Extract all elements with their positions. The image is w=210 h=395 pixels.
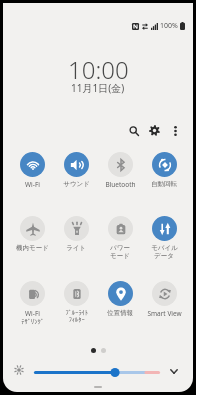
- staticText: パワー: [110, 244, 130, 252]
- staticText: ﾃｻﾞﾘﾝｸﾞ: [21, 318, 44, 325]
- button[interactable]: Wi-Fi: [11, 152, 53, 189]
- button[interactable]: Bluetooth: [99, 152, 141, 189]
- button[interactable]: More options: [168, 123, 183, 138]
- button[interactable]: Smart View: [143, 281, 185, 318]
- button[interactable]: モバイル: [143, 216, 185, 260]
- staticText: 11月1日(金): [71, 81, 125, 95]
- staticText: 自動回転: [151, 180, 177, 188]
- button[interactable]: 位置情報: [99, 281, 141, 317]
- button[interactable]: ライト: [55, 216, 97, 252]
- staticText: 10:00: [68, 53, 129, 86]
- button[interactable]: ﾌﾞﾙｰﾗｲﾄ: [55, 281, 97, 323]
- staticText: 位置情報: [107, 309, 133, 317]
- staticText: Wi-Fi: [25, 180, 40, 189]
- button[interactable]: Expand quick settings: [167, 365, 180, 378]
- staticText: Wi-Fi: [25, 309, 40, 318]
- button[interactable]: Wi-Fi: [11, 281, 53, 325]
- staticText: Smart View: [147, 309, 182, 318]
- staticText: Bluetooth: [105, 180, 136, 189]
- button[interactable]: パワー: [99, 216, 141, 260]
- staticText: 機内モード: [16, 244, 49, 252]
- button[interactable]: Settings: [147, 123, 162, 138]
- staticText: ﾌｨﾙﾀｰ: [68, 316, 85, 323]
- staticText: モード: [110, 252, 130, 260]
- button[interactable]: 自動回転: [143, 152, 185, 188]
- button[interactable]: サウンド: [55, 152, 97, 188]
- staticText: サウンド: [63, 180, 90, 188]
- staticText: モバイル: [151, 244, 178, 252]
- button[interactable]: 機内モード: [11, 216, 53, 252]
- staticText: データ: [154, 252, 174, 260]
- staticText: ﾌﾞﾙｰﾗｲﾄ: [65, 309, 88, 316]
- button[interactable]: Search: [126, 123, 141, 138]
- staticText: 100%: [160, 21, 178, 31]
- staticText: ライト: [66, 244, 86, 252]
